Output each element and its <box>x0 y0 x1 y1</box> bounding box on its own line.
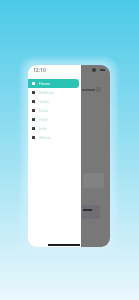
button[interactable]: Docs <box>28 106 79 115</box>
button[interactable]: Home <box>28 79 79 88</box>
button[interactable]: Info <box>28 124 79 133</box>
button[interactable]: Help <box>28 115 79 124</box>
staticText: Info <box>39 126 47 131</box>
staticText: Help <box>39 117 48 122</box>
staticText: About <box>39 135 51 140</box>
staticText: Tasks <box>39 99 50 104</box>
staticText: Home <box>39 81 51 86</box>
staticText: Settings <box>39 90 55 95</box>
staticText: Docs <box>39 108 49 113</box>
staticText: 12:10 <box>33 67 46 74</box>
button[interactable]: About <box>28 133 79 142</box>
button[interactable]: Tasks <box>28 97 79 106</box>
button[interactable]: Settings <box>28 88 79 97</box>
